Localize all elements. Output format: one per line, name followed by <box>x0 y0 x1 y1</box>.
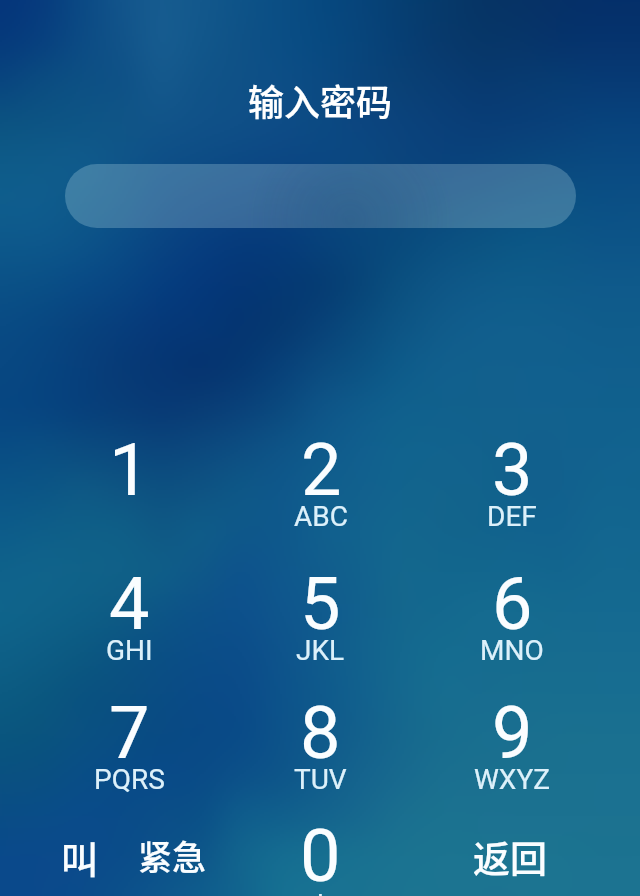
button[interactable]: 9 <box>416 691 607 831</box>
button[interactable]: 1 <box>34 428 225 568</box>
staticText: GHI <box>106 634 153 667</box>
staticText: + <box>225 884 416 896</box>
staticText: 返回 <box>473 830 547 884</box>
staticText: 6 <box>492 562 533 646</box>
button[interactable]: 4 <box>34 562 225 702</box>
staticText: 8 <box>300 691 341 775</box>
staticText: 9 <box>492 691 533 775</box>
staticText: 紧急 <box>138 831 206 880</box>
staticText: JKL <box>296 634 345 667</box>
staticText: 3 <box>492 428 533 512</box>
staticText: 1 <box>109 428 150 512</box>
staticText: MNO <box>480 634 544 667</box>
button[interactable]: Password field <box>65 164 576 228</box>
staticText: WXYZ <box>474 763 550 796</box>
staticText: 输入密码 <box>0 74 640 126</box>
button[interactable]: 5 <box>225 562 416 702</box>
button[interactable]: 3 <box>416 428 607 568</box>
staticText: 5 <box>300 562 341 646</box>
button[interactable]: 0 <box>225 814 416 896</box>
button[interactable]: 2 <box>225 428 416 568</box>
button[interactable]: 6 <box>416 562 607 702</box>
staticText: 4 <box>109 562 150 646</box>
button[interactable]: 返回 <box>445 830 575 896</box>
staticText: 7 <box>109 691 150 775</box>
staticText: 0 <box>300 814 341 896</box>
staticText: TUV <box>294 763 347 796</box>
button[interactable]: 8 <box>225 691 416 831</box>
staticText: 2 <box>301 428 342 512</box>
button[interactable]: 7 <box>34 691 225 831</box>
staticText: 叫 <box>61 831 98 885</box>
staticText: ABC <box>294 500 348 533</box>
staticText: DEF <box>487 500 537 533</box>
button[interactable]: Emergency call <box>42 830 222 896</box>
staticText: PQRS <box>94 763 165 796</box>
